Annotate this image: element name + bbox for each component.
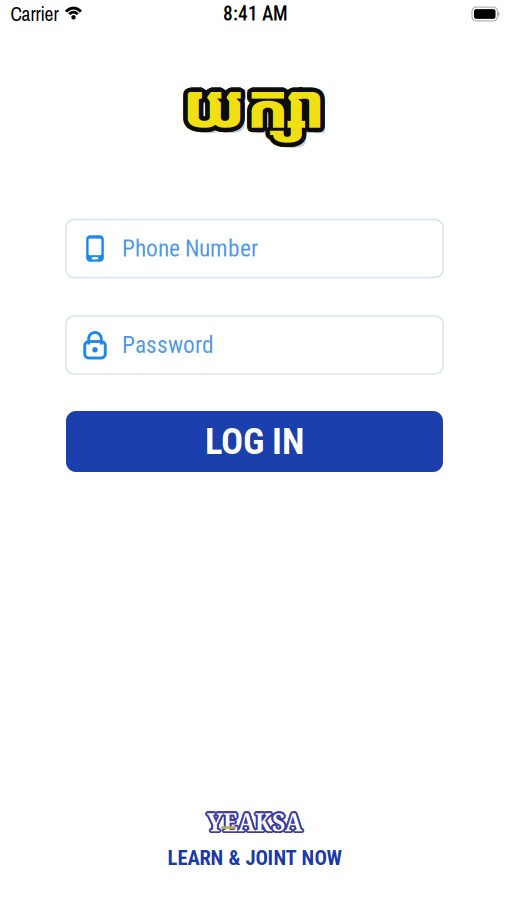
staticText: យក្សា <box>184 62 325 146</box>
staticText: YEAKSA <box>209 803 304 838</box>
button[interactable]: Phone Number <box>66 219 443 277</box>
staticText: យក្សា <box>188 62 329 146</box>
staticText: YEAKSA <box>206 802 301 837</box>
staticText: YEAKSA <box>206 805 301 840</box>
staticText: 8:41 AM <box>223 3 288 25</box>
staticText: យក្សា <box>184 67 325 150</box>
staticText: YEAKSA <box>207 801 302 837</box>
staticText: YEAKSA <box>206 802 301 837</box>
staticText: យក្សា <box>188 60 329 144</box>
staticText: YEAKSA <box>207 805 302 841</box>
staticText: YEAKSA <box>208 805 303 840</box>
staticText: យក្សា <box>188 64 329 147</box>
button[interactable]: LOG IN <box>66 411 443 472</box>
staticText: Phone Number <box>122 235 258 262</box>
staticText: យក្សា <box>187 65 328 149</box>
staticText: YEAKSA <box>208 802 303 837</box>
staticText: យក្សា <box>182 58 323 142</box>
staticText: YEAKSA <box>209 804 304 839</box>
staticText: YEAKSA <box>208 802 303 837</box>
button[interactable]: LEARN & JOINT NOW <box>167 846 341 870</box>
button[interactable]: Password <box>66 316 443 374</box>
staticText: យក្សា <box>180 60 321 144</box>
staticText: YEAKSA <box>205 803 300 839</box>
staticText: YEAKSA <box>208 805 303 840</box>
staticText: យក្សា <box>181 65 322 149</box>
staticText: យក្សា <box>180 64 321 147</box>
staticText: YEAKSA <box>207 803 302 839</box>
staticText: Carrier <box>10 1 58 27</box>
staticText: YEAKSA <box>205 804 300 839</box>
staticText: LOG IN <box>205 420 304 463</box>
staticText: យក្សា <box>188 68 329 151</box>
staticText: Password <box>122 331 214 359</box>
staticText: យក្សា <box>182 66 323 150</box>
staticText: យក្សា <box>187 59 328 142</box>
staticText: យក្សា <box>181 59 322 142</box>
staticText: YEAKSA <box>209 803 304 839</box>
staticText: YEAKSA <box>205 803 300 838</box>
staticText: យក្សា <box>186 58 327 142</box>
staticText: យក្សា <box>186 66 327 150</box>
staticText: YEAKSA <box>206 805 301 840</box>
staticText: យក្សា <box>179 62 320 146</box>
staticText: យក្សា <box>184 58 325 141</box>
staticText: LEARN & JOINT NOW <box>167 846 341 870</box>
